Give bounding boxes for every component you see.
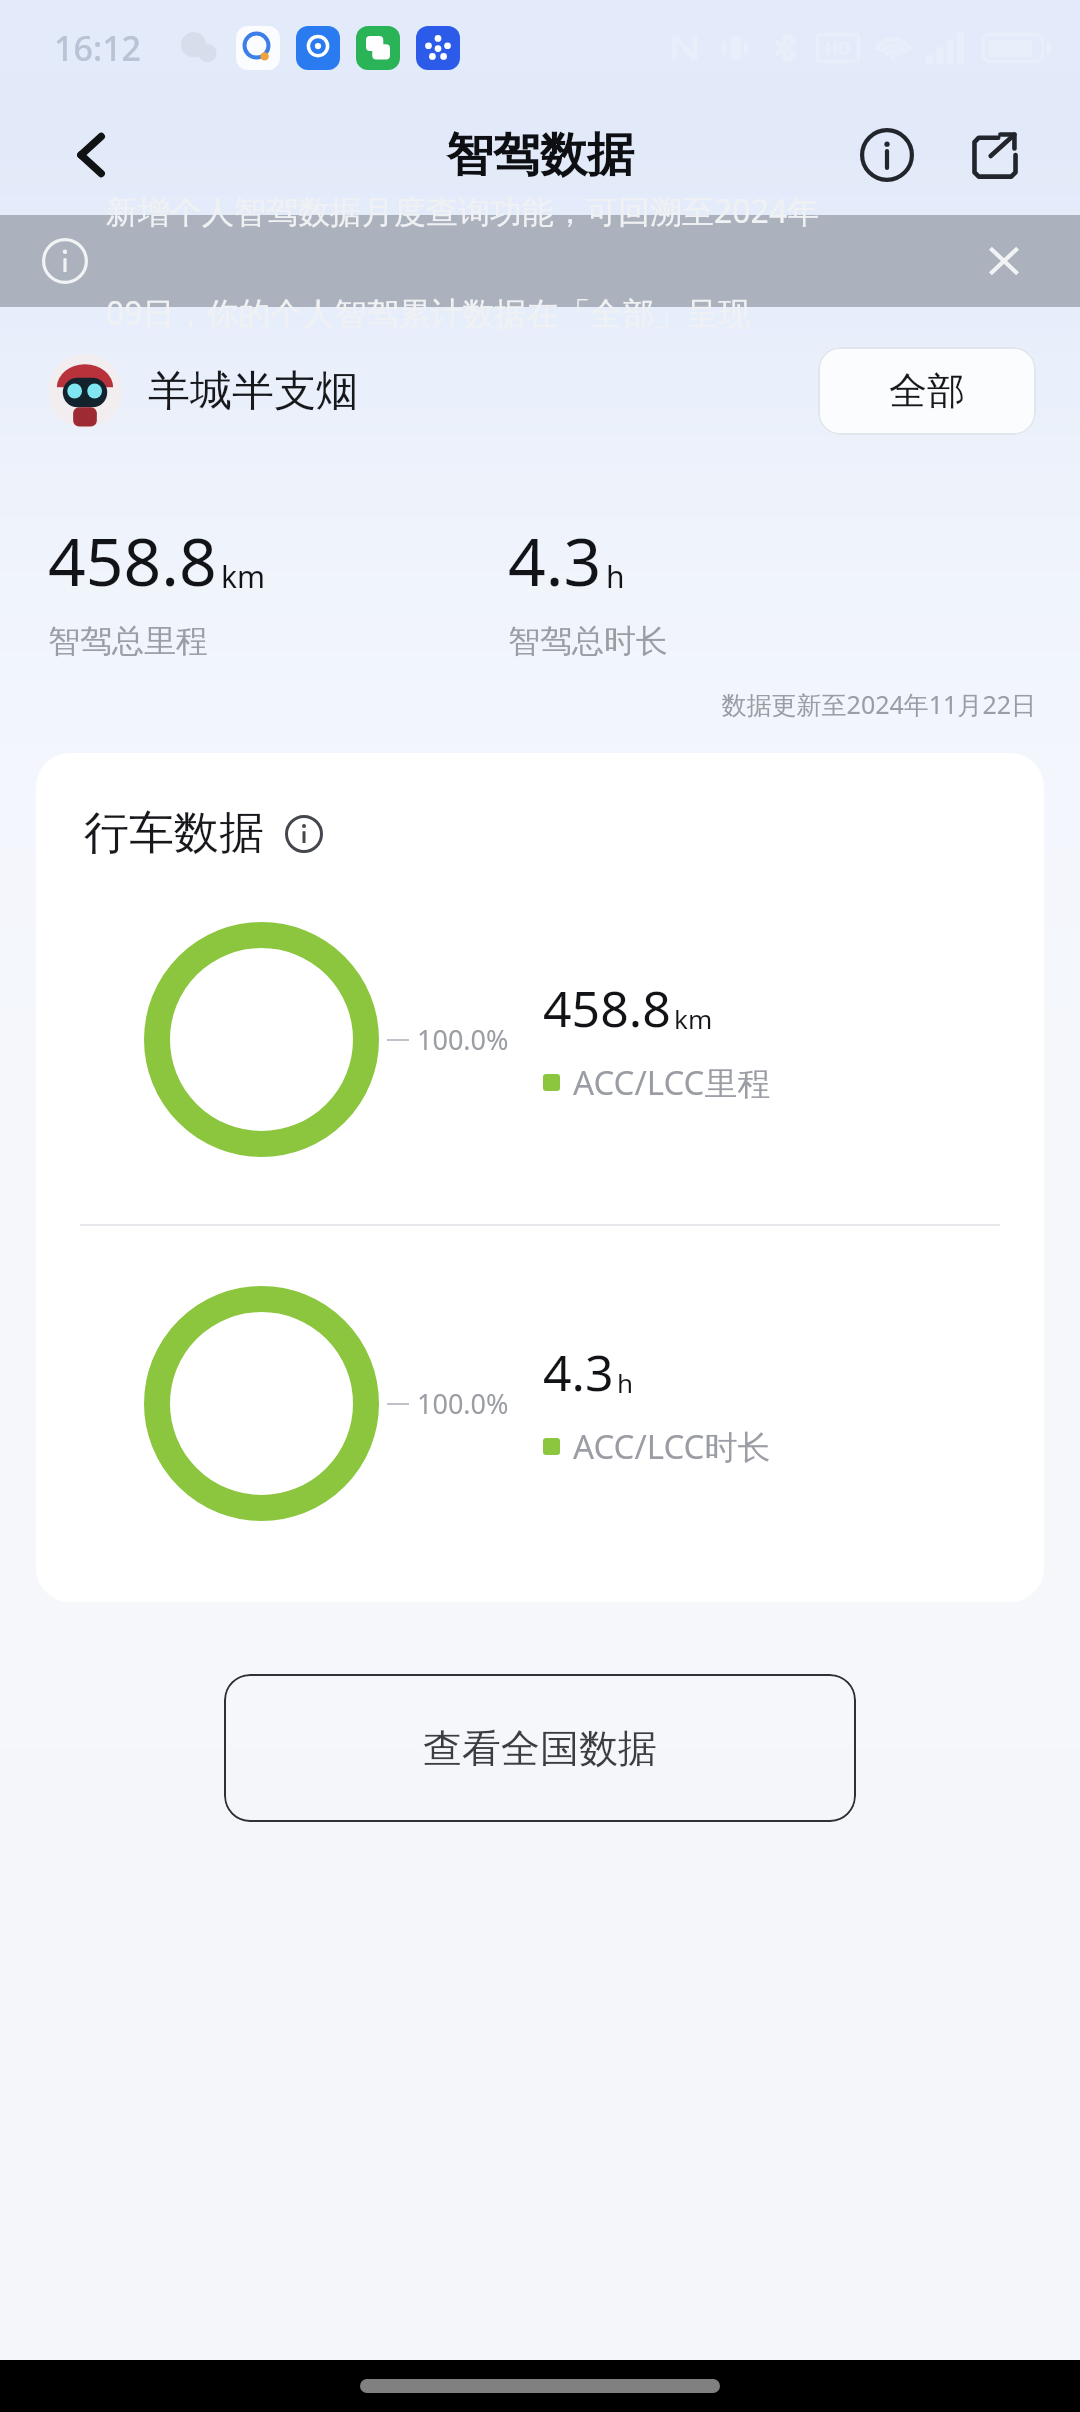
staticText: 4.3: [508, 515, 602, 605]
staticText: ACC/LCC里程: [573, 1060, 771, 1105]
button[interactable]: 全部: [818, 347, 1036, 435]
staticText: ACC/LCC时长: [573, 1424, 771, 1469]
staticText: 4.3: [543, 1338, 614, 1406]
staticText: 458.8: [543, 974, 671, 1042]
button[interactable]: Info: [848, 116, 926, 194]
staticText: 羊城半支烟: [148, 365, 358, 418]
button[interactable]: Share: [956, 116, 1034, 194]
button[interactable]: Driving data info: [280, 810, 328, 858]
staticText: h: [617, 1365, 634, 1400]
staticText: 100.0%: [417, 1385, 509, 1422]
button[interactable]: Close: [972, 229, 1036, 293]
button[interactable]: Back: [54, 117, 130, 193]
staticText: 智驾总里程: [48, 621, 208, 661]
staticText: 智驾数据: [446, 126, 634, 185]
staticText: 16:12: [54, 25, 142, 71]
staticText: 100.0%: [417, 1021, 509, 1058]
staticText: 09日，你的个人智驾累计数据在「全部」呈现: [106, 291, 751, 335]
staticText: 查看全国数据: [423, 1724, 657, 1773]
staticText: h: [606, 556, 625, 597]
staticText: 数据更新至2024年11月22日: [0, 687, 1036, 721]
staticText: km: [674, 1001, 713, 1036]
staticText: 行车数据: [84, 805, 264, 862]
staticText: 全部: [889, 367, 965, 415]
staticText: km: [221, 556, 266, 597]
button[interactable]: 查看全国数据: [224, 1674, 856, 1822]
staticText: 新增个人智驾数据月度查询功能，可回溯至2024年: [106, 189, 820, 233]
staticText: 智驾总时长: [508, 621, 668, 661]
staticText: 458.8: [48, 515, 217, 605]
